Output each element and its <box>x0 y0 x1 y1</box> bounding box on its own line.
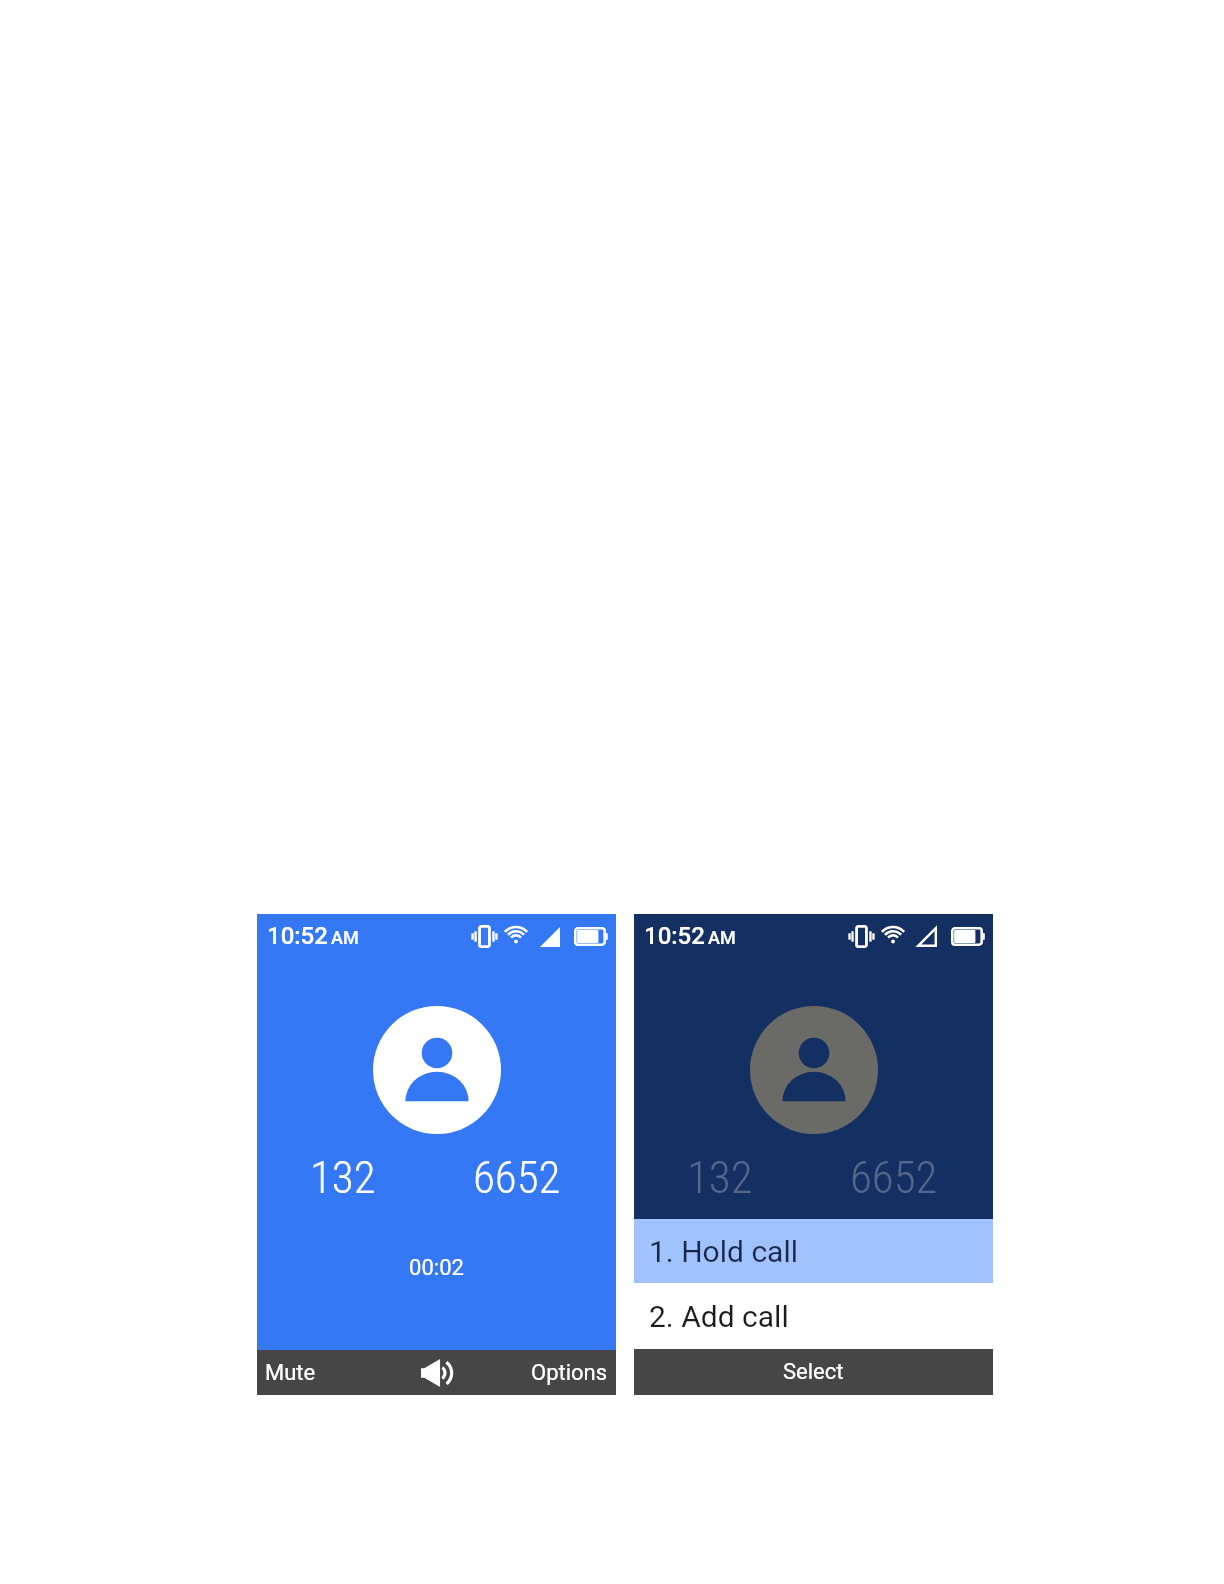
staticText: Select <box>783 1359 844 1385</box>
staticText: 00:02 <box>634 1255 993 1281</box>
button[interactable]: 1. Hold call <box>634 1219 993 1283</box>
button[interactable]: 2. Add call <box>634 1283 993 1349</box>
staticText: 00:02 <box>257 1255 616 1281</box>
staticText: AM <box>708 927 736 948</box>
button[interactable]: Mute <box>257 1351 326 1395</box>
staticText: AM <box>331 927 359 948</box>
button[interactable]: Options <box>521 1351 616 1395</box>
button[interactable]: Select <box>634 1349 993 1395</box>
staticText: Options <box>531 1360 608 1386</box>
staticText: 10:52 <box>644 922 705 950</box>
staticText: 132 <box>310 1151 376 1204</box>
staticText: 1. Hold call <box>649 1234 798 1269</box>
button[interactable]: Speaker <box>415 1353 458 1393</box>
staticText: 6652 <box>473 1151 561 1204</box>
staticText: 6652 <box>850 1151 938 1204</box>
staticText: 2. Add call <box>649 1299 789 1334</box>
staticText: 132 <box>687 1151 753 1204</box>
staticText: 10:52 <box>267 922 328 950</box>
staticText: Mute <box>265 1360 316 1386</box>
